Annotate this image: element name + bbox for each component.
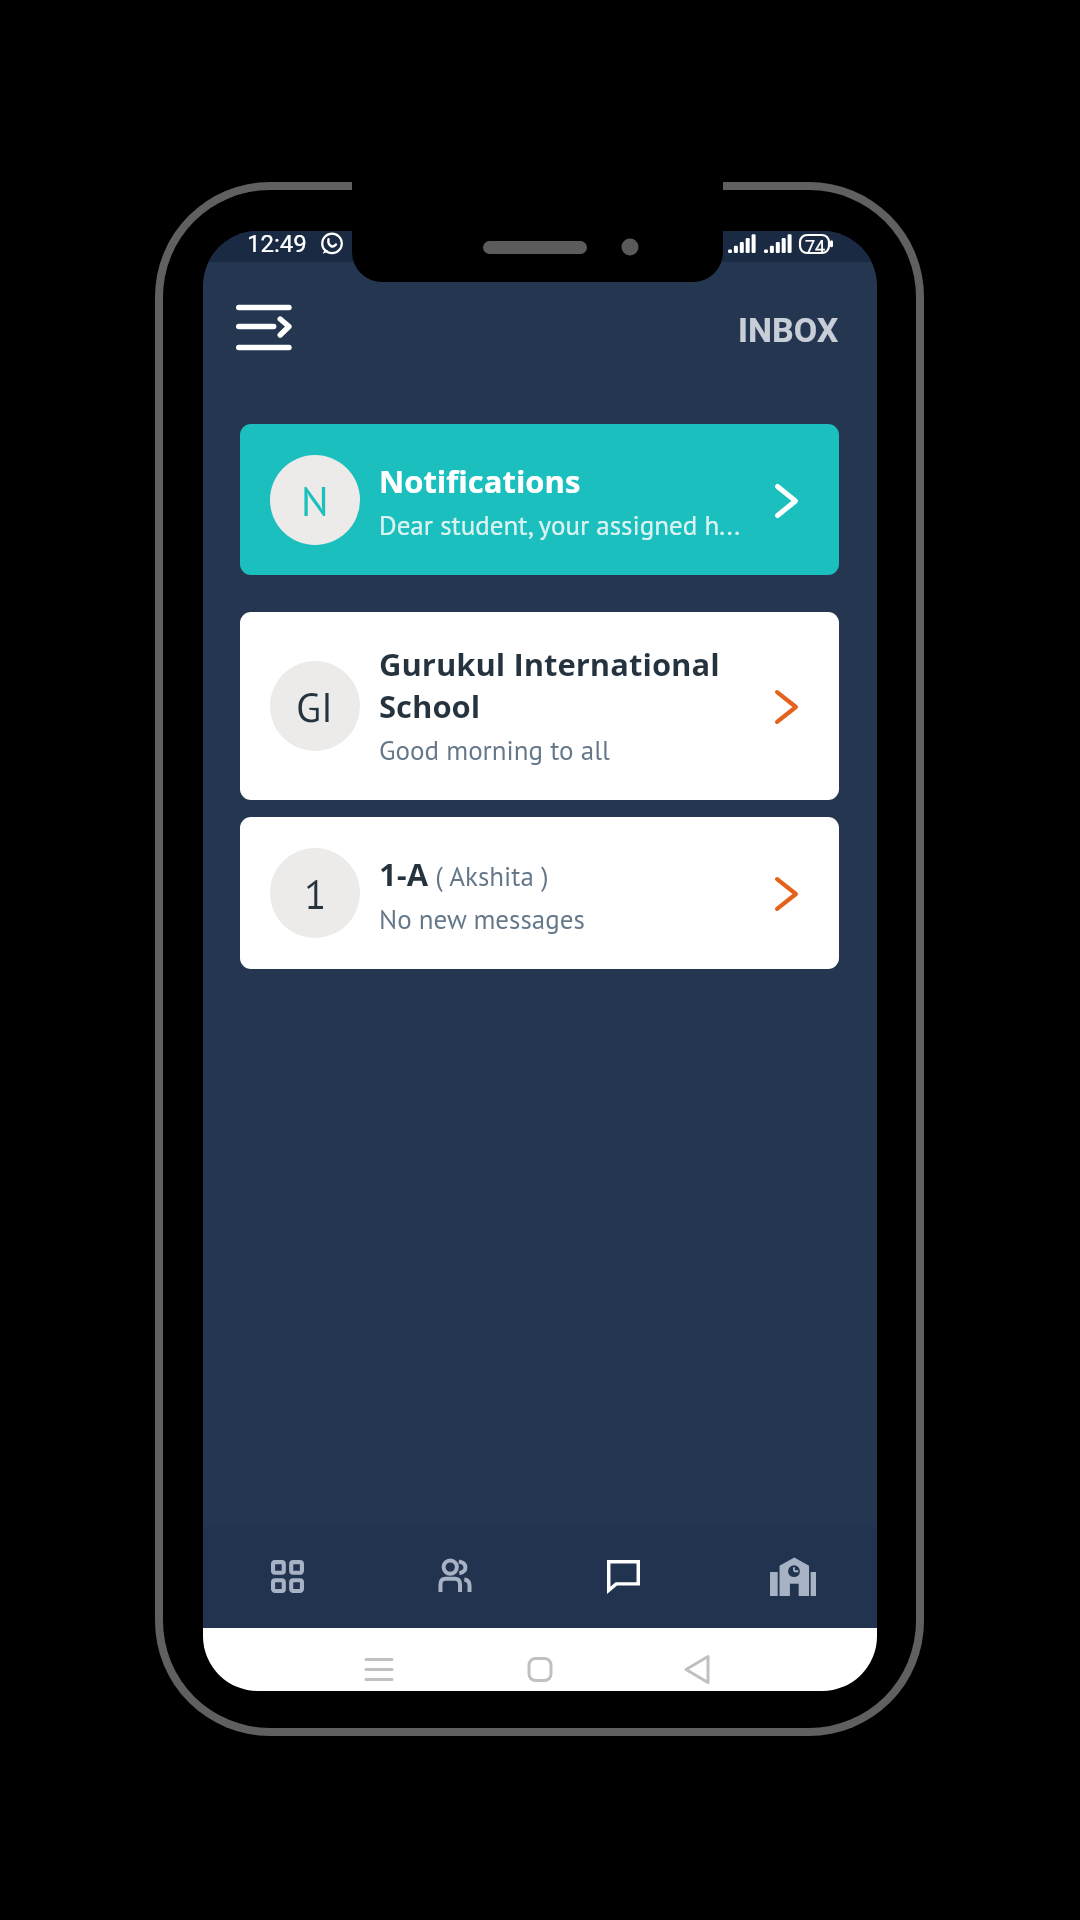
staticText: Notifications <box>379 460 581 502</box>
button[interactable]: School <box>708 1527 877 1628</box>
staticText: INBOX <box>738 310 839 350</box>
staticText: GI <box>296 680 334 733</box>
staticText: Good morning to all <box>379 733 610 768</box>
staticText: 1 <box>304 867 327 920</box>
button[interactable]: Open navigation drawer <box>213 286 305 371</box>
button[interactable]: Gurukul International School <box>240 612 839 800</box>
staticText: N <box>301 474 329 527</box>
button[interactable]: Dashboard <box>203 1527 371 1628</box>
staticText: 12:49 <box>247 231 307 258</box>
button[interactable]: Back <box>658 1628 738 1691</box>
button[interactable]: Contacts <box>371 1527 539 1628</box>
staticText: No new messages <box>379 902 585 937</box>
staticText: Dear student, your assigned h... <box>379 508 741 543</box>
button[interactable]: Home <box>500 1628 580 1691</box>
staticText: Gurukul International School <box>379 643 779 727</box>
button[interactable]: Messages <box>539 1527 708 1628</box>
button[interactable]: Recent apps <box>339 1628 419 1691</box>
staticText: 74 <box>805 236 826 257</box>
button[interactable]: Notifications <box>240 424 839 575</box>
staticText: 1-A ( Akshita ) <box>379 853 549 895</box>
button[interactable]: 1-A Akshita <box>240 817 839 969</box>
